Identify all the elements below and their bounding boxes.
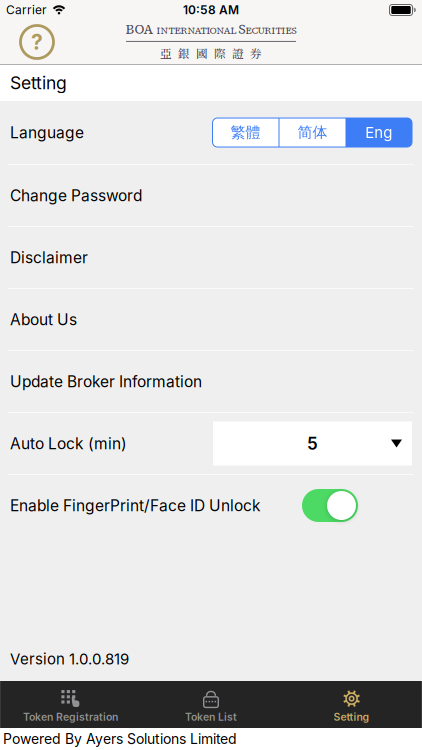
staticText: Update Broker Information: [10, 372, 202, 391]
staticText: ?: [31, 29, 43, 55]
staticText: BOA INTERNATIONAL SECURITIES: [125, 21, 296, 38]
button[interactable]: Update Broker Information: [0, 350, 422, 412]
staticText: 繁體: [230, 123, 260, 142]
staticText: About Us: [10, 310, 77, 329]
button[interactable]: Disclaimer: [0, 226, 422, 288]
button[interactable]: Setting: [281, 681, 422, 728]
button[interactable]: About Us: [0, 288, 422, 350]
staticText: Eng: [365, 123, 392, 141]
button[interactable]: Auto Lock minutes picker: [213, 421, 412, 465]
staticText: Token List: [185, 711, 237, 723]
staticText: Auto Lock (min): [10, 434, 127, 453]
staticText: Enable FingerPrint/Face ID Unlock: [10, 496, 261, 515]
staticText: Language: [10, 123, 84, 142]
staticText: 5: [307, 433, 318, 454]
button[interactable]: Enable FingerPrint/Face ID Unlock: [302, 489, 358, 522]
staticText: Token Registration: [23, 711, 118, 723]
staticText: 简体: [297, 123, 327, 142]
button[interactable]: Help: [19, 24, 55, 60]
staticText: Change Password: [10, 186, 142, 205]
button[interactable]: 简体: [279, 118, 345, 147]
staticText: Version 1.0.0.819: [10, 650, 129, 668]
button[interactable]: Eng: [345, 118, 412, 147]
staticText: Carrier: [6, 3, 47, 17]
button[interactable]: Token List: [141, 681, 281, 728]
staticText: Powered By Ayers Solutions Limited: [3, 730, 237, 747]
button[interactable]: 繁體: [212, 118, 278, 147]
staticText: Disclaimer: [10, 248, 88, 267]
button[interactable]: Token Registration: [0, 681, 141, 728]
staticText: Setting: [334, 711, 370, 723]
staticText: 10:58 AM: [183, 3, 239, 17]
staticText: Setting: [10, 72, 67, 94]
staticText: 亞 銀 國 際 證 券: [160, 45, 262, 61]
button[interactable]: Change Password: [0, 164, 422, 226]
